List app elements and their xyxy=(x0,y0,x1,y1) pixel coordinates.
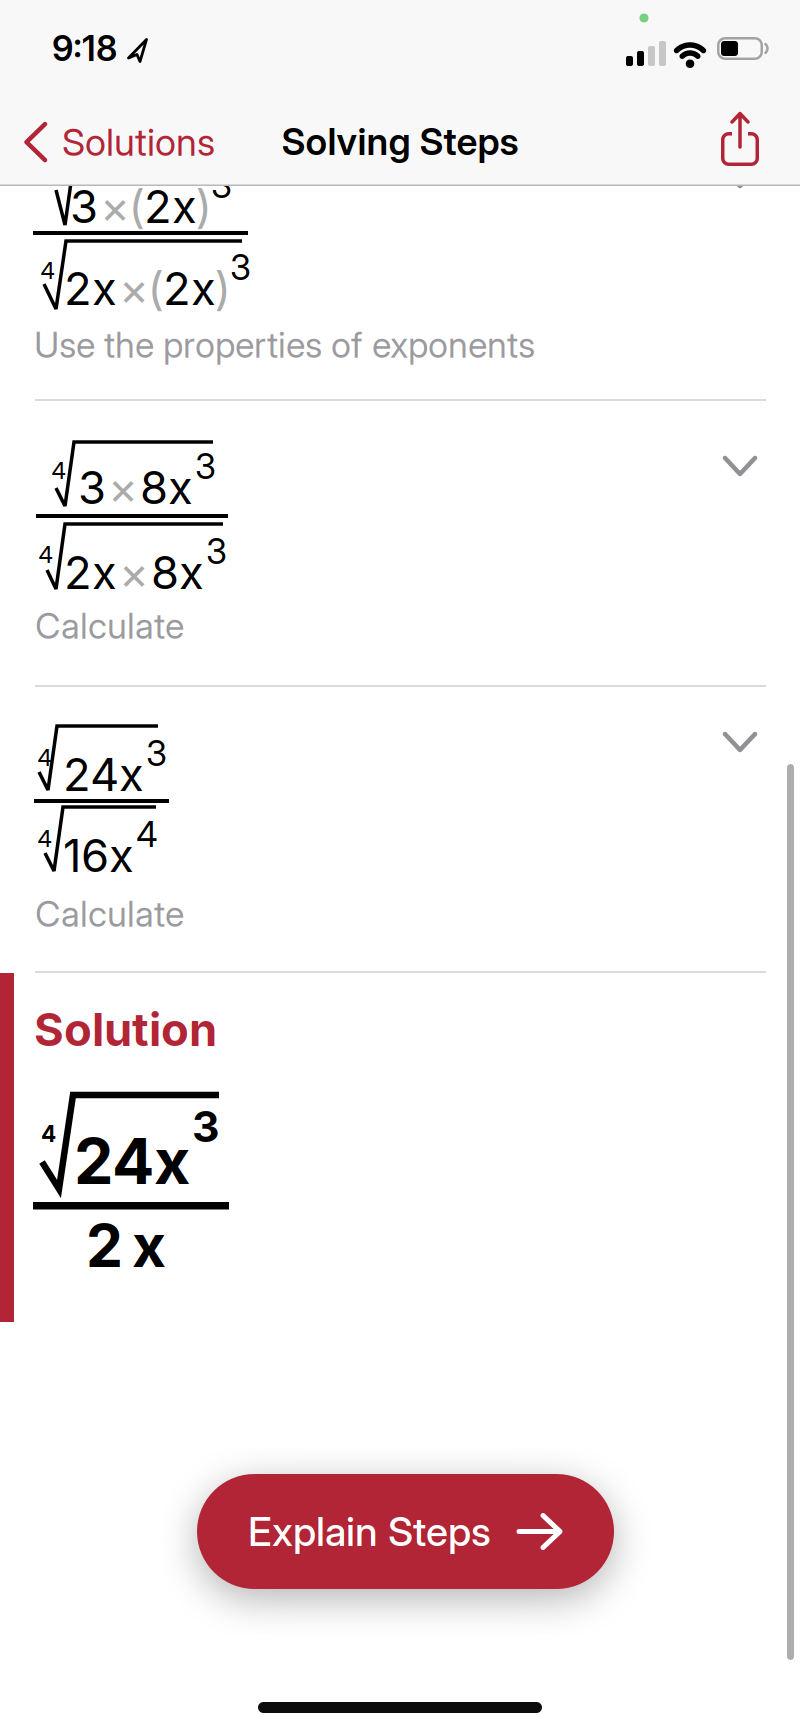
staticText: 4 xyxy=(51,456,66,485)
staticText: 24x xyxy=(63,747,144,802)
staticText: 2x xyxy=(64,261,117,316)
staticText: Calculate xyxy=(35,892,184,935)
staticText: 8x xyxy=(140,460,193,515)
staticText: 3 xyxy=(78,460,106,515)
staticText: 24x xyxy=(74,1123,190,1199)
staticText: Solution xyxy=(34,1002,217,1057)
staticText: 3 xyxy=(211,164,232,206)
staticText: 3 xyxy=(206,530,227,572)
staticText: Solutions xyxy=(62,119,215,165)
staticText: 2x xyxy=(144,179,197,234)
staticText: 3 xyxy=(192,1101,220,1152)
staticText: ) xyxy=(214,261,231,316)
staticText: 3 xyxy=(195,445,216,487)
staticText: Explain Steps xyxy=(248,1507,491,1556)
staticText: 4 xyxy=(41,1120,56,1147)
staticText: 16x xyxy=(63,828,134,883)
staticText: ( xyxy=(128,179,145,234)
button[interactable]: Share xyxy=(721,112,759,166)
staticText: 3 xyxy=(146,732,167,774)
staticText: 9:18 xyxy=(52,27,117,69)
staticText: 2 x xyxy=(86,1210,166,1281)
staticText: ( xyxy=(147,261,164,316)
staticText: Solving Steps xyxy=(281,119,518,164)
staticText: 8x xyxy=(151,545,204,600)
staticText: Use the properties of exponents xyxy=(34,323,535,366)
staticText: 4 xyxy=(37,824,52,853)
staticText: 2x xyxy=(64,545,117,600)
staticText: 3 xyxy=(230,246,251,288)
staticText: × xyxy=(100,179,130,234)
staticText: 3 xyxy=(70,179,98,234)
button[interactable]: Explain Steps xyxy=(197,1474,614,1589)
staticText: ) xyxy=(195,179,212,234)
button[interactable]: Expand step xyxy=(718,720,762,764)
button[interactable]: Expand step xyxy=(718,156,762,200)
staticText: 4 xyxy=(40,256,55,285)
staticText: 2x xyxy=(163,261,216,316)
staticText: 4 xyxy=(38,540,53,569)
staticText: Calculate xyxy=(35,604,184,647)
staticText: × xyxy=(119,261,149,316)
staticText: 4 xyxy=(37,743,52,772)
staticText: × xyxy=(119,545,149,600)
staticText: 4 xyxy=(136,813,158,855)
staticText: × xyxy=(108,460,138,515)
button[interactable]: Expand step xyxy=(718,444,762,488)
button[interactable]: Back to Solutions xyxy=(24,119,215,165)
